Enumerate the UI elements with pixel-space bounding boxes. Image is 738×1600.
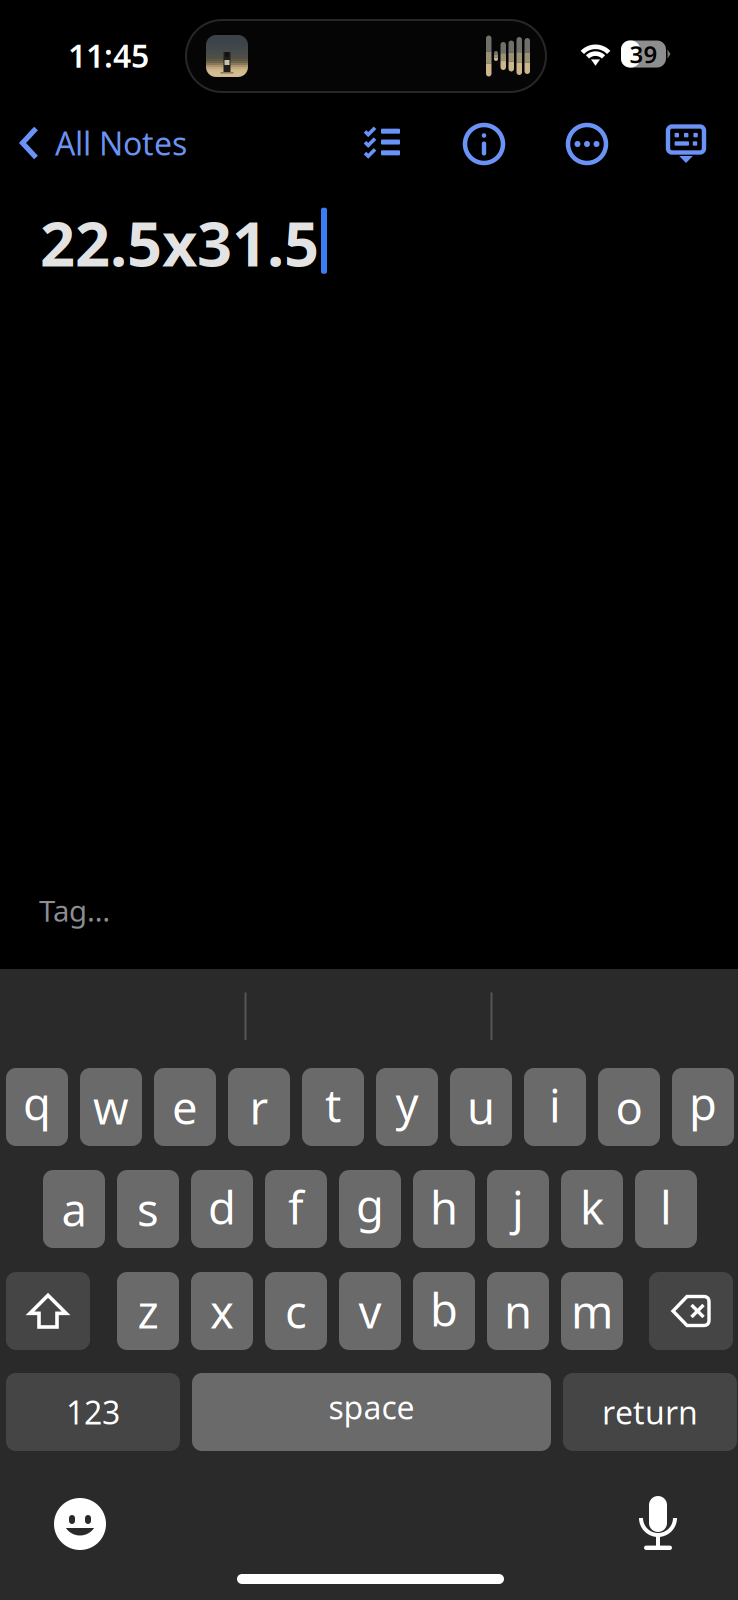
staticText: f [288, 1177, 304, 1237]
button[interactable]: Info [439, 102, 529, 186]
button[interactable]: return [563, 1373, 737, 1451]
button[interactable]: t [302, 1068, 364, 1146]
button[interactable]: o [598, 1068, 660, 1146]
staticText: 11:45 [68, 34, 149, 76]
button[interactable]: f [265, 1170, 327, 1248]
button[interactable]: b [413, 1272, 475, 1350]
staticText: b [430, 1279, 458, 1339]
button[interactable]: h [413, 1170, 475, 1248]
staticText: p [689, 1073, 717, 1133]
button[interactable]: e [154, 1068, 216, 1146]
button[interactable]: space [192, 1373, 551, 1451]
button[interactable]: x [191, 1272, 253, 1350]
button[interactable]: j [487, 1170, 549, 1248]
staticText: 39 [629, 38, 657, 70]
staticText: g [356, 1175, 384, 1235]
staticText: h [430, 1177, 458, 1237]
staticText: t [325, 1075, 341, 1135]
staticText: v [358, 1281, 381, 1341]
staticText: Tag… [39, 891, 110, 930]
staticText: y [395, 1073, 418, 1133]
staticText: i [549, 1075, 561, 1135]
button[interactable]: d [191, 1170, 253, 1248]
button[interactable]: z [117, 1272, 179, 1350]
button[interactable]: k [561, 1170, 623, 1248]
button[interactable]: 123 [6, 1373, 180, 1451]
staticText: e [172, 1077, 198, 1137]
staticText: r [249, 1077, 268, 1137]
staticText: u [467, 1077, 495, 1137]
button[interactable]: Emoji [25, 1486, 135, 1562]
staticText: space [328, 1386, 414, 1428]
staticText: x [210, 1281, 234, 1341]
staticText: n [504, 1281, 532, 1341]
button[interactable]: w [80, 1068, 142, 1146]
staticText: w [93, 1077, 129, 1137]
staticText: c [285, 1281, 307, 1341]
button[interactable]: s [117, 1170, 179, 1248]
staticText: l [660, 1177, 672, 1237]
button[interactable]: All Notes [0, 101, 206, 185]
button[interactable]: c [265, 1272, 327, 1350]
button[interactable]: i [524, 1068, 586, 1146]
button[interactable]: p [672, 1068, 734, 1146]
staticText: 123 [66, 1391, 120, 1433]
button[interactable]: More [542, 102, 632, 186]
staticText: m [571, 1281, 613, 1341]
button[interactable]: m [561, 1272, 623, 1350]
staticText: d [208, 1177, 236, 1237]
staticText: return [602, 1391, 698, 1433]
button[interactable]: y [376, 1068, 438, 1146]
button[interactable]: Hide Keyboard [641, 103, 731, 187]
button[interactable]: Shift [6, 1272, 90, 1350]
button[interactable]: v [339, 1272, 401, 1350]
staticText: q [23, 1073, 51, 1133]
staticText: k [580, 1177, 604, 1237]
button[interactable]: Checklist [337, 100, 427, 184]
staticText: o [615, 1077, 642, 1137]
staticText: All Notes [55, 122, 187, 164]
button[interactable]: n [487, 1272, 549, 1350]
button[interactable]: Dictate [603, 1485, 713, 1561]
staticText: j [512, 1177, 524, 1237]
button[interactable]: q [6, 1068, 68, 1146]
button[interactable]: a [43, 1170, 105, 1248]
button[interactable]: r [228, 1068, 290, 1146]
button[interactable]: Delete [649, 1272, 733, 1350]
staticText: a [61, 1179, 86, 1239]
button[interactable]: g [339, 1170, 401, 1248]
staticText: 22.5x31.5 [40, 202, 319, 283]
button[interactable]: u [450, 1068, 512, 1146]
staticText: s [137, 1179, 159, 1239]
staticText: z [137, 1281, 158, 1341]
button[interactable]: l [635, 1170, 697, 1248]
